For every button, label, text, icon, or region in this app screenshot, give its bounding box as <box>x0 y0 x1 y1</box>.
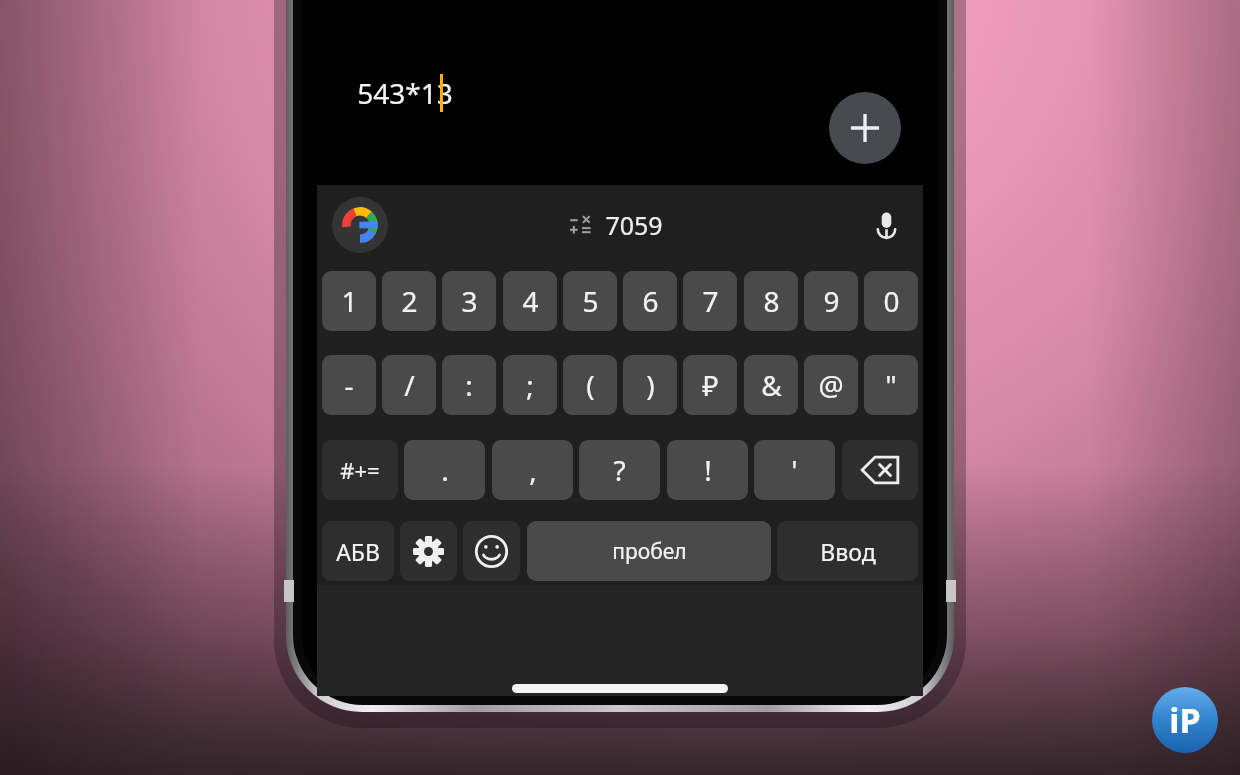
button[interactable]: ? <box>579 440 660 500</box>
button[interactable]: @ <box>804 355 858 415</box>
button[interactable]: ) <box>623 355 677 415</box>
staticText: 5 <box>582 282 599 320</box>
staticText: ? <box>613 451 626 489</box>
button[interactable]: iP <box>1152 687 1218 753</box>
staticText: 1 <box>341 282 358 320</box>
button[interactable]: Emoji <box>463 521 520 581</box>
button[interactable]: " <box>864 355 918 415</box>
button[interactable]: ( <box>563 355 617 415</box>
button[interactable]: Settings <box>400 521 457 581</box>
staticText: АБВ <box>336 536 380 567</box>
button[interactable]: , <box>492 440 573 500</box>
staticText: Ввод <box>820 536 876 567</box>
staticText: 2 <box>401 282 418 320</box>
staticText: 7 <box>702 282 719 320</box>
staticText: , <box>529 451 537 489</box>
staticText: 0 <box>883 282 900 320</box>
button[interactable]: 9 <box>804 271 858 331</box>
button[interactable]: 7059 <box>569 208 663 242</box>
button[interactable]: 2 <box>382 271 436 331</box>
staticText: 4 <box>522 282 539 320</box>
staticText: . <box>441 451 449 489</box>
button[interactable]: Ввод <box>777 521 918 581</box>
button[interactable]: 1 <box>322 271 376 331</box>
staticText: пробел <box>612 537 687 566</box>
staticText: ) <box>646 366 655 404</box>
button[interactable]: 5 <box>563 271 617 331</box>
staticText: 7059 <box>605 208 663 242</box>
staticText: ' <box>791 451 798 489</box>
button[interactable]: АБВ <box>322 521 394 581</box>
button[interactable]: ₽ <box>683 355 737 415</box>
staticText: ! <box>704 451 712 489</box>
button[interactable]: Google <box>332 197 388 253</box>
button[interactable]: 3 <box>442 271 496 331</box>
button[interactable]: 543*13 <box>357 74 453 112</box>
button[interactable]: 4 <box>503 271 557 331</box>
staticText: : <box>465 366 473 404</box>
button[interactable]: . <box>404 440 485 500</box>
button[interactable]: ; <box>503 355 557 415</box>
button[interactable]: 0 <box>864 271 918 331</box>
button[interactable]: ' <box>754 440 835 500</box>
staticText: ₽ <box>702 366 719 404</box>
staticText: 543*13 <box>357 74 453 112</box>
staticText: iP <box>1169 697 1201 743</box>
staticText: " <box>885 366 897 404</box>
button[interactable]: - <box>322 355 376 415</box>
staticText: @ <box>818 366 844 404</box>
staticText: 6 <box>642 282 659 320</box>
staticText: 3 <box>461 282 478 320</box>
button[interactable]: 8 <box>744 271 798 331</box>
button[interactable]: Voice input <box>863 202 909 248</box>
button[interactable]: 7 <box>683 271 737 331</box>
button[interactable]: : <box>442 355 496 415</box>
button[interactable]: Backspace <box>842 440 918 500</box>
button[interactable]: / <box>382 355 436 415</box>
button[interactable]: #+= <box>322 440 398 500</box>
staticText: - <box>344 366 354 404</box>
staticText: ( <box>586 366 595 404</box>
staticText: #+= <box>340 455 380 485</box>
button[interactable]: ! <box>667 440 748 500</box>
button[interactable]: 6 <box>623 271 677 331</box>
button[interactable]: пробел <box>527 521 771 581</box>
staticText: 9 <box>823 282 840 320</box>
button[interactable]: & <box>744 355 798 415</box>
staticText: & <box>761 366 782 404</box>
button[interactable]: Add <box>829 92 901 164</box>
staticText: / <box>404 366 415 404</box>
staticText: ; <box>526 366 534 404</box>
staticText: 8 <box>763 282 780 320</box>
